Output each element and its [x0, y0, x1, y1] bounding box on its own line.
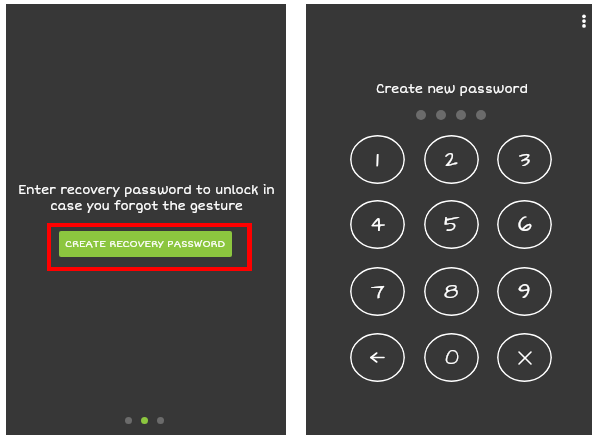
button[interactable]: More options	[570, 4, 597, 32]
button[interactable]: 7	[350, 267, 405, 316]
staticText: Enter recovery password to unlock in cas…	[18, 183, 275, 214]
button[interactable]: Backspace	[350, 333, 405, 382]
button[interactable]: 4	[350, 200, 405, 249]
button[interactable]: 6	[497, 200, 552, 249]
button[interactable]: CREATE RECOVERY PASSWORD	[59, 231, 232, 257]
button[interactable]: 2	[424, 135, 479, 184]
staticText: 3	[519, 144, 531, 175]
staticText: 0	[445, 342, 459, 373]
staticText: 6	[518, 209, 532, 240]
button[interactable]: 8	[424, 267, 479, 316]
staticText: Create new password	[376, 82, 528, 97]
staticText: 2	[445, 144, 458, 175]
staticText: 8	[444, 276, 459, 307]
button[interactable]: 1	[350, 135, 405, 184]
staticText: 7	[371, 276, 385, 307]
button[interactable]: 5	[424, 200, 479, 249]
button[interactable]: Clear	[497, 333, 552, 382]
staticText: 9	[518, 276, 531, 307]
button[interactable]: 3	[497, 135, 552, 184]
staticText: 1	[376, 144, 379, 175]
staticText: 4	[370, 209, 385, 240]
button[interactable]: 0	[424, 333, 479, 382]
staticText: 5	[444, 209, 460, 240]
staticText: CREATE RECOVERY PASSWORD	[65, 238, 226, 250]
button[interactable]: 9	[497, 267, 552, 316]
